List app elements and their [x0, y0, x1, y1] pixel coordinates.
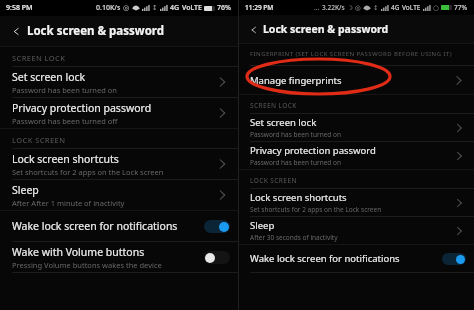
button[interactable]: Toggle on [204, 220, 230, 233]
staticText: ○ [433, 4, 439, 12]
button[interactable]: Back [8, 23, 24, 39]
staticText: Manage fingerprints [250, 74, 342, 87]
staticText: Privacy protection password [250, 144, 376, 157]
staticText: Lock screen & password [263, 22, 389, 36]
button[interactable]: Manage fingerprints [239, 66, 474, 94]
staticText: Password has been turned on [250, 158, 341, 167]
button[interactable]: Set screen lock [239, 114, 474, 141]
button[interactable]: Sleep [239, 217, 474, 244]
staticText: ◎ [123, 4, 130, 12]
staticText: ◎ [355, 4, 361, 12]
staticText: ↕ [152, 4, 158, 12]
staticText: Wake lock screen for notifications [250, 252, 400, 265]
staticText: SCREEN LOCK [250, 101, 297, 110]
staticText: Password has been turned on [250, 130, 341, 139]
staticText: VoLTE [182, 3, 202, 13]
button[interactable]: Lock screen shortcuts [0, 149, 238, 179]
staticText: FINGERPRINT (SET LOCK SCREEN PASSWORD BE… [250, 50, 452, 58]
button[interactable]: Toggle off [204, 251, 230, 264]
button[interactable]: Privacy protection password [239, 142, 474, 169]
staticText: 77% [454, 3, 467, 12]
staticText: 0.10K/s [96, 3, 121, 13]
staticText: Wake lock screen for notifications [12, 219, 178, 233]
staticText: Sleep [12, 183, 39, 197]
staticText: Set screen lock [250, 116, 317, 129]
staticText: 3.22K/s [322, 3, 345, 12]
staticText: 4G [391, 3, 400, 12]
button[interactable]: Sleep [0, 180, 238, 210]
staticText: ☽ [347, 4, 353, 12]
button[interactable]: Back [246, 22, 261, 37]
staticText: Password has been turned off [12, 116, 118, 126]
staticText: Lock screen & password [27, 23, 165, 39]
staticText: Privacy protection password [12, 101, 152, 115]
staticText: 4G [170, 3, 180, 13]
staticText: LOCK SCREEN [250, 176, 297, 185]
staticText: Set screen lock [12, 70, 86, 84]
button[interactable]: Wake with Volume buttons [0, 242, 238, 272]
staticText: Lock screen shortcuts [250, 191, 347, 204]
staticText: Sleep [250, 219, 275, 232]
staticText: Password has been turned on [12, 85, 117, 95]
button[interactable]: Toggle on [442, 253, 466, 265]
staticText: 11:29 PM [245, 3, 274, 12]
button[interactable]: Set screen lock [0, 67, 238, 97]
staticText: LOCK SCREEN [12, 135, 66, 145]
button[interactable]: Wake lock screen for notifications [0, 211, 238, 241]
button[interactable]: Privacy protection password [0, 98, 238, 128]
staticText: 76% [217, 3, 231, 13]
staticText: ↕ [373, 4, 379, 12]
staticText: Lock screen shortcuts [12, 152, 119, 166]
staticText: Set shortcuts for 2 apps on the Lock scr… [12, 167, 164, 177]
staticText: Wake with Volume buttons [12, 245, 145, 259]
staticText: Set shortcuts for 2 apps on the Lock scr… [250, 205, 382, 214]
staticText: Pressing Volume buttons wakes the device [12, 260, 162, 270]
staticText: 9:58 PM [6, 3, 33, 13]
staticText: VoLTE [402, 3, 421, 12]
button[interactable]: Wake lock screen for notifications [239, 245, 474, 272]
staticText: After 30 seconds of inactivity [250, 233, 338, 242]
staticText: After After 1 minute of inactivity [12, 198, 125, 208]
staticText: ... [314, 3, 320, 12]
staticText: SCREEN LOCK [12, 53, 66, 63]
button[interactable]: Lock screen shortcuts [239, 189, 474, 216]
